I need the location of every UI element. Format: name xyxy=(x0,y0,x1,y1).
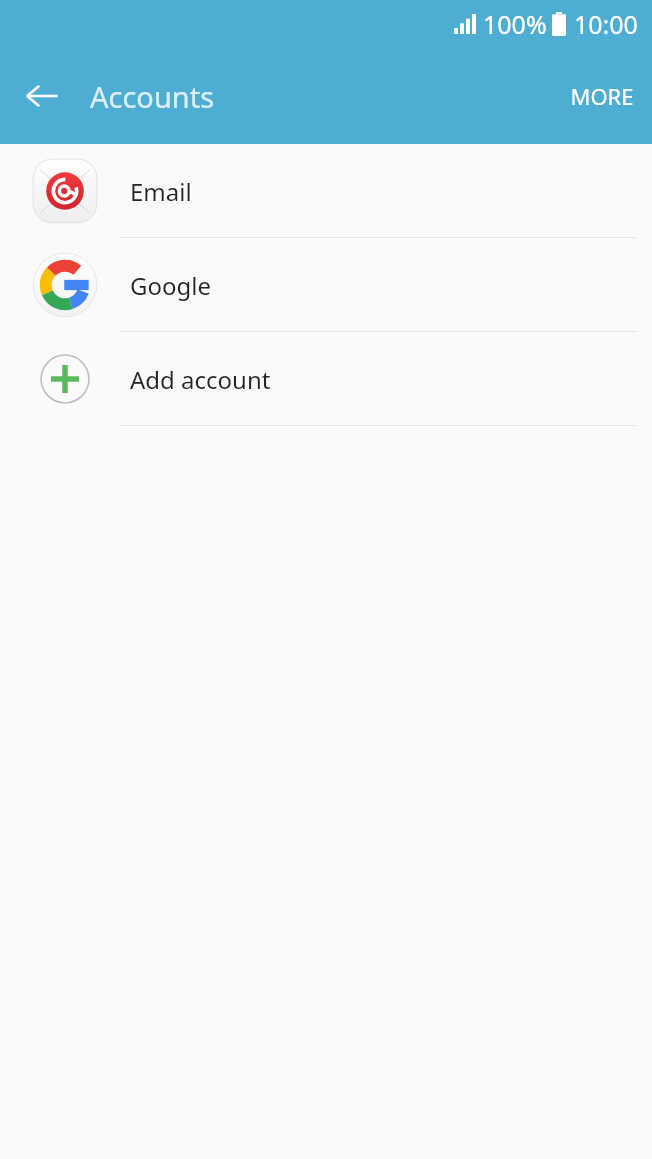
button[interactable]: MORE xyxy=(552,48,652,144)
staticText: MORE xyxy=(570,81,634,111)
button[interactable]: Google xyxy=(0,238,652,332)
staticText: Accounts xyxy=(90,77,215,116)
staticText: Google xyxy=(130,269,211,302)
button[interactable]: Navigate up xyxy=(14,68,70,124)
button[interactable]: Add account xyxy=(0,332,652,426)
staticText: Email xyxy=(130,175,192,208)
staticText: Add account xyxy=(130,363,271,396)
staticText: 100% xyxy=(483,7,547,41)
button[interactable]: Email xyxy=(0,144,652,238)
staticText: 10:00 xyxy=(574,7,638,41)
